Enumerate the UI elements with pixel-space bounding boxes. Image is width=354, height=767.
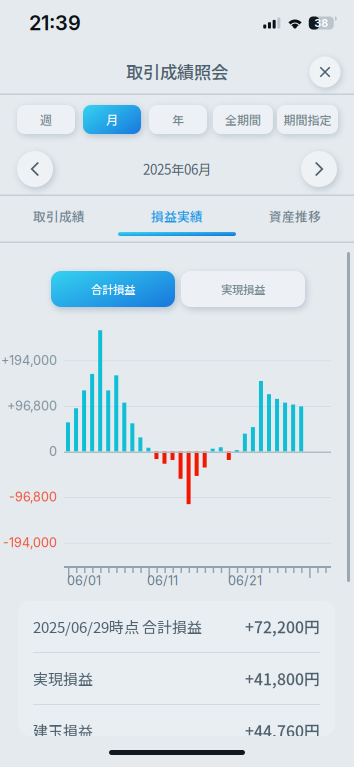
staticText: -96,800: [9, 489, 57, 505]
staticText: 0: [49, 444, 57, 459]
staticText: 2025年06月: [143, 159, 211, 179]
staticText: +41,800円: [245, 667, 320, 690]
staticText: 実現損益: [33, 668, 93, 689]
button[interactable]: 期間指定: [277, 105, 338, 134]
button[interactable]: 資産推移: [236, 196, 354, 236]
button[interactable]: 合計損益: [51, 271, 175, 307]
staticText: 年: [172, 111, 184, 128]
staticText: 21:39: [29, 11, 81, 35]
button[interactable]: 全期間: [213, 105, 273, 134]
staticText: +194,000: [1, 353, 57, 368]
staticText: 06/01: [67, 573, 101, 588]
button[interactable]: 損益実績: [118, 196, 236, 236]
staticText: 全期間: [225, 111, 261, 128]
button[interactable]: 年: [149, 105, 207, 134]
staticText: 実現損益: [221, 281, 265, 297]
staticText: 取引成績照会: [126, 59, 228, 84]
staticText: 合計損益: [91, 281, 135, 297]
button[interactable]: 閉じる: [303, 50, 347, 94]
button[interactable]: 次の月: [297, 147, 341, 191]
staticText: 週: [40, 111, 52, 128]
staticText: 2025/06/29時点 合計損益: [33, 616, 202, 637]
button[interactable]: 週: [17, 105, 75, 134]
staticText: 38: [314, 16, 328, 29]
button[interactable]: 前の月: [13, 147, 57, 191]
staticText: 期間指定: [283, 111, 331, 128]
staticText: 月: [106, 111, 118, 128]
staticText: 06/21: [228, 573, 262, 588]
staticText: 資産推移: [269, 207, 321, 225]
staticText: 損益実績: [151, 207, 203, 225]
staticText: 06/11: [147, 573, 178, 588]
button[interactable]: 実現損益: [181, 271, 305, 307]
staticText: 建玉損益: [33, 720, 93, 741]
staticText: 取引成績: [33, 207, 85, 225]
button[interactable]: 取引成績: [0, 196, 118, 236]
staticText: +44,760円: [245, 719, 320, 742]
staticText: +72,200円: [245, 615, 320, 638]
staticText: -194,000: [3, 535, 57, 550]
button[interactable]: 月: [83, 105, 141, 134]
staticText: +96,800: [7, 398, 57, 414]
